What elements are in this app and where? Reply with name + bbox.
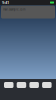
button[interactable] xyxy=(42,82,52,88)
button[interactable] xyxy=(4,82,13,88)
staticText: mail.example.com xyxy=(3,8,25,11)
button[interactable] xyxy=(17,82,26,88)
staticText: 9:41 xyxy=(2,0,9,5)
button[interactable] xyxy=(29,82,39,88)
